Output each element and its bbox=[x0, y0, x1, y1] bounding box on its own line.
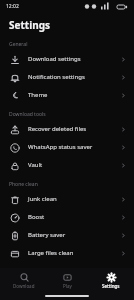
staticText: 12:02 bbox=[6, 3, 19, 10]
button[interactable]: Boost bbox=[0, 208, 134, 226]
button[interactable]: WhatsApp status saver bbox=[0, 138, 134, 156]
staticText: Phone clean bbox=[9, 181, 38, 188]
staticText: Settings bbox=[9, 18, 50, 32]
button[interactable]: Vault bbox=[0, 156, 134, 174]
button[interactable]: Download bbox=[4, 272, 44, 289]
button[interactable]: Download settings bbox=[0, 50, 134, 68]
staticText: Download tools bbox=[9, 111, 46, 118]
button[interactable]: Large files clean bbox=[0, 244, 134, 262]
staticText: General bbox=[9, 41, 28, 48]
button[interactable]: Battery saver bbox=[0, 226, 134, 244]
staticText: Large files clean bbox=[28, 249, 121, 257]
staticText: WhatsApp status saver bbox=[28, 143, 121, 151]
staticText: Recover deleted files bbox=[28, 125, 121, 133]
button[interactable]: Junk clean bbox=[0, 190, 134, 208]
staticText: Download settings bbox=[28, 55, 121, 63]
staticText: Play bbox=[63, 283, 72, 289]
button[interactable]: Notification settings bbox=[0, 68, 134, 86]
staticText: Theme bbox=[28, 91, 121, 99]
staticText: Battery saver bbox=[28, 231, 121, 239]
button[interactable]: Settings bbox=[91, 272, 131, 289]
staticText: Settings bbox=[102, 283, 120, 289]
button[interactable]: Play bbox=[47, 272, 87, 289]
staticText: Download bbox=[13, 283, 35, 289]
button[interactable]: Theme bbox=[0, 86, 134, 104]
staticText: Notification settings bbox=[28, 73, 121, 81]
staticText: Boost bbox=[28, 213, 121, 221]
button[interactable]: Recover deleted files bbox=[0, 120, 134, 138]
staticText: Junk clean bbox=[28, 195, 121, 203]
staticText: Vault bbox=[28, 161, 121, 169]
